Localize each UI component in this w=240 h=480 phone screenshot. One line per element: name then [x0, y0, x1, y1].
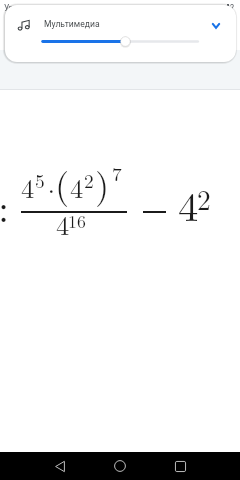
- staticText: 4: [70, 168, 84, 206]
- staticText: 4: [178, 175, 199, 233]
- staticText: 2: [197, 179, 211, 218]
- staticText: (: [55, 157, 70, 209]
- button[interactable]: Recent apps: [165, 452, 195, 480]
- staticText: ): [95, 157, 110, 209]
- staticText: ·: [41, 171, 62, 209]
- staticText: Мультимедиа: [44, 19, 100, 29]
- staticText: ?: [230, 3, 234, 13]
- staticText: 7: [112, 159, 122, 187]
- staticText: 16: [68, 208, 86, 233]
- staticText: 2: [84, 166, 94, 194]
- staticText: 4: [56, 205, 70, 243]
- staticText: 4: [21, 168, 35, 206]
- button[interactable]: Back: [45, 452, 75, 480]
- button[interactable]: [0, 33, 240, 50]
- staticText: Уравнения и неравенства: [4, 3, 106, 13]
- staticText: :: [0, 177, 10, 234]
- staticText: 5: [35, 166, 45, 194]
- button[interactable]: Expand media output: [205, 15, 227, 37]
- button[interactable]: Home: [105, 452, 135, 480]
- button[interactable]: [5, 5, 236, 62]
